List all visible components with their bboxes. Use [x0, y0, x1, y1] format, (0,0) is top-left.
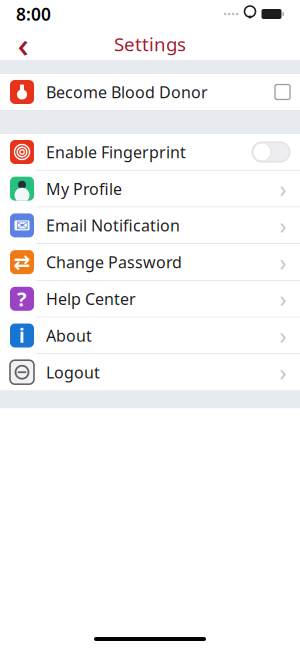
staticText: ⇄: [13, 251, 30, 273]
button[interactable]: ✉: [0, 207, 300, 243]
staticText: Settings: [114, 32, 186, 56]
button[interactable]: Back: [6, 27, 40, 61]
button[interactable]: My Profile: [0, 171, 300, 207]
staticText: My Profile: [46, 178, 122, 199]
button[interactable]: ?: [0, 281, 300, 317]
staticText: ›: [279, 320, 286, 350]
button[interactable]: ⇄: [0, 244, 300, 280]
button[interactable]: Enable Fingerprint: [0, 134, 300, 170]
staticText: ›: [279, 247, 286, 277]
staticText: i: [19, 323, 25, 348]
staticText: ✉: [16, 217, 28, 234]
staticText: Email Notification: [46, 215, 180, 236]
staticText: Become Blood Donor: [46, 81, 208, 103]
staticText: Enable Fingerprint: [46, 141, 186, 163]
staticText: ›: [279, 210, 286, 240]
staticText: 8:00: [16, 2, 51, 25]
staticText: ›: [279, 174, 286, 204]
staticText: ‹: [17, 21, 28, 67]
staticText: ?: [17, 285, 27, 312]
staticText: Logout: [46, 362, 100, 383]
staticText: Change Password: [46, 251, 182, 273]
button[interactable]: Logout: [0, 354, 300, 390]
button[interactable]: Become Blood Donor: [0, 74, 300, 110]
staticText: ›: [279, 284, 286, 314]
button[interactable]: i: [0, 317, 300, 353]
staticText: About: [46, 325, 92, 346]
staticText: ›: [279, 357, 286, 387]
staticText: Help Center: [46, 288, 136, 309]
